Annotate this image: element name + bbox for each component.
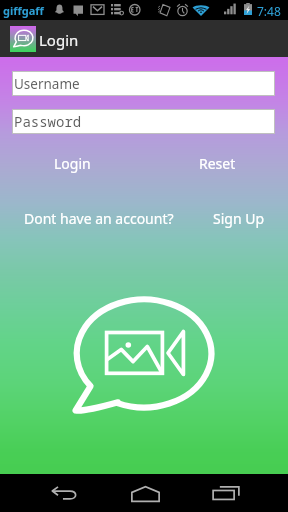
staticText: Login xyxy=(39,30,79,50)
staticText: giffgaff xyxy=(3,3,44,18)
button[interactable]: Sign Up xyxy=(213,207,265,229)
staticText: Username xyxy=(14,75,80,93)
button[interactable]: Password xyxy=(12,109,275,134)
button[interactable]: Username xyxy=(12,71,275,96)
staticText: Login xyxy=(54,154,91,173)
button[interactable]: Home xyxy=(109,474,181,512)
button[interactable]: Reset xyxy=(157,152,277,174)
staticText: Dont have an account? xyxy=(24,209,174,228)
button[interactable]: Recent apps xyxy=(190,474,262,512)
staticText: 7:48 xyxy=(257,3,281,19)
staticText: Password xyxy=(14,112,82,131)
staticText: Sign Up xyxy=(213,209,265,228)
button[interactable]: Dont have an account? xyxy=(24,207,174,229)
button[interactable]: Back xyxy=(28,474,100,512)
staticText: Reset xyxy=(199,154,236,173)
button[interactable]: Login xyxy=(12,152,132,174)
